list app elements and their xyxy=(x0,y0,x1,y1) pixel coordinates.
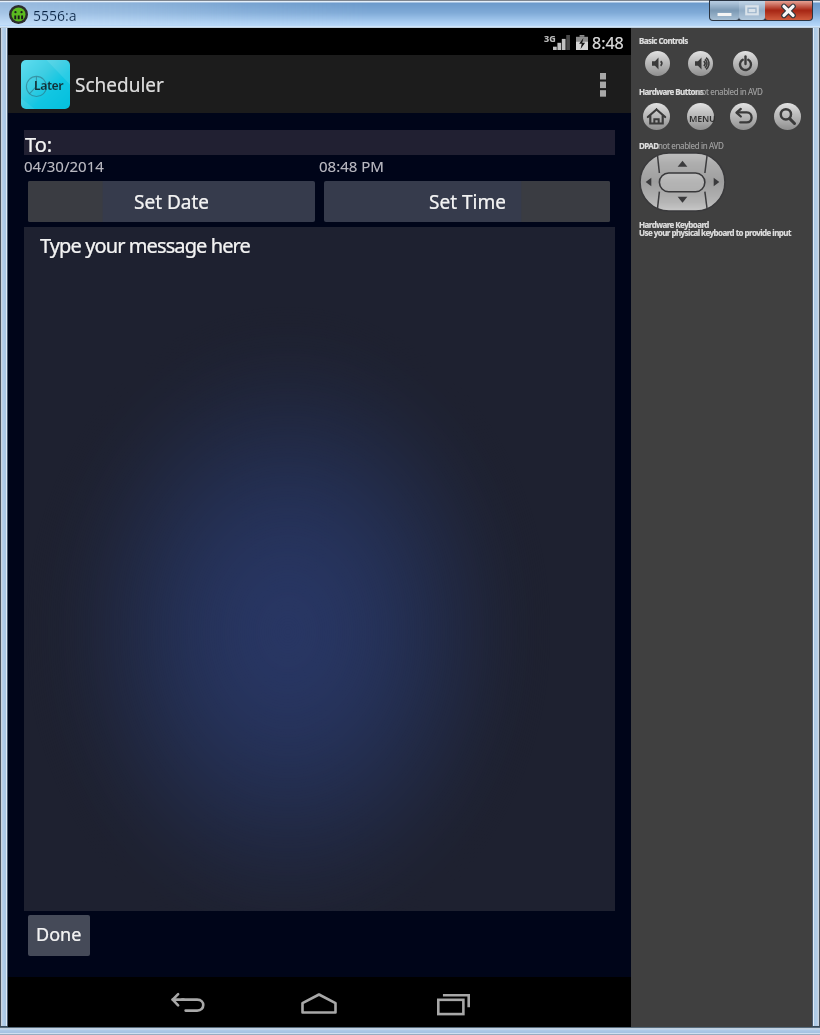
staticText: Later xyxy=(34,77,64,93)
button[interactable]: Menu xyxy=(687,103,714,130)
staticText: 8:48 xyxy=(592,32,624,54)
button[interactable]: Search xyxy=(774,103,801,130)
staticText: Basic Controls xyxy=(639,35,688,46)
button[interactable]: Back xyxy=(730,103,757,130)
staticText: DPAD xyxy=(639,140,659,151)
button[interactable]: Set Date xyxy=(28,181,315,222)
staticText: not enabled in AVD xyxy=(658,140,724,151)
button[interactable]: Done xyxy=(28,915,90,956)
button[interactable]: Volume up xyxy=(688,51,713,76)
staticText: To: xyxy=(25,131,53,156)
button[interactable]: Volume down xyxy=(645,51,670,76)
button[interactable]: D-pad xyxy=(640,153,725,211)
button[interactable]: Recent apps xyxy=(418,978,488,1028)
button[interactable]: Close xyxy=(765,1,812,20)
staticText: Done xyxy=(36,922,82,947)
staticText: 08:48 PM xyxy=(319,156,384,176)
staticText: Type your message here xyxy=(40,232,250,259)
button[interactable]: Power xyxy=(733,51,758,76)
button[interactable]: Back xyxy=(150,979,228,1029)
staticText: Scheduler xyxy=(75,72,164,98)
button[interactable]: Set Time xyxy=(324,181,610,222)
staticText: 5556:a xyxy=(33,6,77,25)
button[interactable]: Minimize xyxy=(710,1,739,20)
staticText: Hardware Buttons xyxy=(639,86,704,97)
staticText: Set Time xyxy=(429,189,506,215)
staticText: MENU xyxy=(689,112,716,124)
button[interactable]: Home xyxy=(284,978,354,1028)
staticText: 3G xyxy=(544,32,556,44)
button[interactable]: Maximize xyxy=(739,1,765,20)
button[interactable]: Home xyxy=(643,103,670,130)
staticText: not enabled in AVD xyxy=(697,86,763,97)
button[interactable]: More options xyxy=(583,55,623,113)
staticText: Use your physical keyboard to provide in… xyxy=(639,227,791,238)
staticText: Hardware Keyboard xyxy=(639,219,709,230)
staticText: 04/30/2014 xyxy=(24,156,104,176)
staticText: Set Date xyxy=(134,189,210,215)
